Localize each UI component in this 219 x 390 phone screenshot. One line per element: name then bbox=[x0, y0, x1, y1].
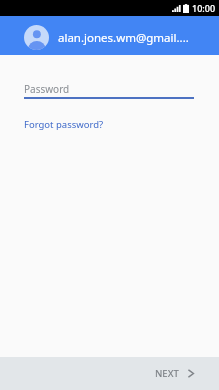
button[interactable]: Forgot password? bbox=[24, 118, 104, 131]
button[interactable]: Password bbox=[0, 82, 219, 99]
staticText: alan.jones.wm@gmail.... bbox=[58, 30, 189, 46]
staticText: 10:00 bbox=[192, 2, 216, 14]
staticText: Password bbox=[24, 82, 70, 96]
button[interactable]: alan.jones.wm@gmail.... bbox=[0, 16, 219, 55]
staticText: Forgot password? bbox=[24, 118, 104, 131]
staticText: NEXT bbox=[155, 367, 179, 380]
button[interactable]: NEXT bbox=[141, 361, 219, 386]
other: Next bbox=[188, 369, 194, 378]
